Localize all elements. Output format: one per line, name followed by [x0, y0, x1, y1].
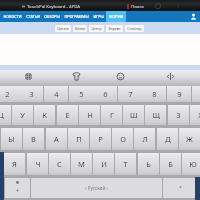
staticText: М — [78, 159, 85, 169]
button[interactable]: Влево — [73, 25, 87, 32]
staticText: 3 — [29, 89, 34, 99]
staticText: ОБЗОРЫ — [44, 14, 60, 19]
staticText: НОВОСТИ — [3, 14, 22, 19]
staticText: Ц — [0, 110, 4, 120]
staticText: Е — [65, 110, 70, 120]
button[interactable]: Центр — [89, 25, 104, 32]
button[interactable]: 5 — [69, 86, 93, 102]
staticText: В — [31, 134, 36, 144]
button[interactable]: СТАТЬИ — [24, 11, 42, 22]
staticText: Ш — [130, 110, 138, 120]
staticText: 2 — [5, 89, 10, 99]
staticText: Вправо — [108, 26, 121, 31]
staticText: И — [101, 159, 107, 169]
button[interactable]: Цитата — [55, 25, 71, 32]
staticText: А — [54, 134, 59, 144]
button[interactable]: ПРОГРАММЫ — [62, 11, 91, 22]
button[interactable]: У — [12, 105, 33, 125]
button[interactable]: TouchPal Keyboard - 4PDA — [22, 3, 80, 9]
button[interactable]: Move cursor — [166, 72, 175, 81]
staticText: Н — [87, 110, 93, 120]
button[interactable]: Ь — [138, 153, 159, 175]
button[interactable]: П — [68, 128, 89, 150]
staticText: 6 — [103, 89, 108, 99]
button[interactable]: 6 — [93, 86, 117, 102]
staticText: К — [42, 110, 47, 120]
staticText: TouchPal Keyboard - 4PDA — [27, 3, 80, 9]
button[interactable]: В — [23, 128, 44, 150]
button[interactable]: Спойлер — [125, 25, 144, 32]
button[interactable]: Ш — [123, 105, 144, 125]
button[interactable]: К — [34, 105, 55, 125]
button[interactable]: Х — [190, 105, 200, 125]
button[interactable]: З — [168, 105, 189, 125]
staticText: Ь — [146, 159, 151, 169]
button[interactable]: Л — [134, 128, 155, 150]
button[interactable]: Emoji — [116, 72, 125, 81]
staticText: У — [20, 110, 25, 120]
button[interactable]: С — [49, 153, 70, 175]
staticText: 9 — [177, 89, 182, 99]
button[interactable]: Д — [157, 128, 178, 150]
staticText: 8 — [152, 89, 157, 99]
staticText: 5 — [79, 89, 84, 99]
button[interactable]: И — [93, 153, 114, 175]
staticText: С — [57, 159, 62, 169]
button[interactable]: О — [112, 128, 133, 150]
button[interactable]: Ц — [0, 105, 11, 125]
button[interactable]: Р — [90, 128, 111, 150]
staticText: Ю — [189, 159, 197, 169]
button[interactable]: Enter — [163, 178, 195, 198]
staticText: О — [120, 134, 126, 144]
staticText: ‹ Русский › — [85, 185, 108, 191]
button[interactable]: Т — [115, 153, 136, 175]
button[interactable]: 4 — [44, 86, 68, 102]
staticText: ИГРЫ — [93, 14, 104, 19]
staticText: Х — [198, 110, 200, 120]
staticText: Влево — [75, 26, 85, 31]
button[interactable]: М — [71, 153, 92, 175]
button[interactable]: 9 — [167, 86, 191, 102]
button[interactable]: Ж — [179, 128, 200, 150]
button[interactable]: Поиск — [127, 3, 144, 9]
staticText: Щ — [152, 110, 160, 120]
staticText: З — [176, 110, 181, 120]
staticText: 4 — [54, 89, 59, 99]
button[interactable]: А — [46, 128, 67, 150]
button[interactable]: 2 — [0, 86, 19, 102]
staticText: П — [76, 134, 82, 144]
staticText: Б — [168, 159, 173, 169]
button[interactable]: Ч — [27, 153, 48, 175]
button[interactable]: Symbols — [5, 178, 30, 198]
button[interactable]: ОБЗОРЫ — [42, 11, 62, 22]
button[interactable]: 8 — [142, 86, 166, 102]
staticText: Р — [98, 134, 103, 144]
button[interactable]: Ы — [1, 128, 22, 150]
staticText: 7 — [128, 89, 133, 99]
button[interactable]: 3 — [19, 86, 43, 102]
button[interactable]: ФОРУМ — [106, 11, 126, 22]
staticText: Ы — [8, 134, 15, 144]
button[interactable]: Я — [4, 153, 25, 175]
staticText: Спойлер — [127, 26, 142, 31]
button[interactable]: Н — [79, 105, 100, 125]
button[interactable]: ИГРЫ — [91, 11, 106, 22]
button[interactable]: Щ — [145, 105, 166, 125]
button[interactable]: ‹ Русский › — [31, 178, 162, 198]
button[interactable]: 7 — [118, 86, 142, 102]
staticText: Д — [165, 134, 171, 144]
staticText: Цитата — [57, 26, 69, 31]
button[interactable]: НОВОСТИ — [1, 11, 24, 22]
button[interactable]: Theme — [72, 72, 81, 81]
button[interactable]: Menu — [175, 3, 181, 9]
button[interactable]: Г — [101, 105, 122, 125]
button[interactable]: Вправо — [106, 25, 123, 32]
button[interactable]: Language — [24, 72, 33, 81]
button[interactable]: Ю — [182, 153, 200, 175]
button[interactable]: 0 — [192, 86, 200, 102]
button[interactable]: Е — [57, 105, 78, 125]
button[interactable]: Tabs — [155, 3, 161, 9]
button[interactable]: Account — [190, 13, 197, 20]
button[interactable]: Б — [160, 153, 181, 175]
staticText: ФОРУМ — [109, 14, 123, 19]
